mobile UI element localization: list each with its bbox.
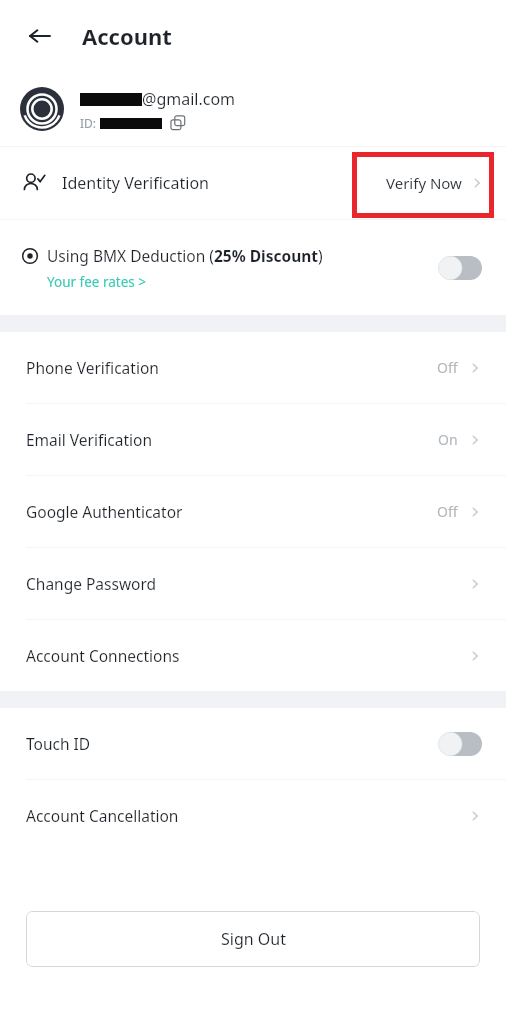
staticText: Account — [82, 21, 172, 51]
button[interactable]: @gmail.com — [0, 72, 506, 146]
button[interactable]: Change Password — [0, 548, 506, 619]
button[interactable]: Account Connections — [0, 620, 506, 691]
button[interactable]: Phone Verification — [0, 332, 506, 403]
button[interactable]: Toggle — [438, 732, 482, 756]
staticText: @gmail.com — [142, 88, 236, 110]
staticText: Email Verification — [26, 429, 152, 450]
button[interactable]: Using BMX Deduction (25% Discount) — [0, 220, 506, 315]
button[interactable]: Verify Now — [386, 173, 484, 193]
staticText: Off — [437, 358, 458, 377]
staticText: ID: — [80, 115, 100, 131]
button[interactable]: Sign Out — [26, 911, 480, 967]
staticText: Verify Now — [386, 173, 462, 193]
staticText: Google Authenticator — [26, 501, 183, 522]
staticText: Identity Verification — [62, 172, 209, 194]
staticText: Touch ID — [26, 733, 91, 754]
button[interactable]: Touch ID — [0, 708, 506, 779]
staticText: Off — [437, 502, 458, 521]
staticText: Account Connections — [26, 645, 180, 666]
staticText: Using BMX Deduction (25% Discount) — [47, 245, 323, 266]
button[interactable]: Identity Verification — [0, 147, 506, 219]
staticText: Account Cancellation — [26, 805, 179, 826]
staticText: Change Password — [26, 573, 157, 594]
button[interactable]: Account Cancellation — [0, 780, 506, 851]
staticText: Sign Out — [221, 928, 286, 950]
button[interactable]: Email Verification — [0, 404, 506, 475]
staticText: Phone Verification — [26, 357, 159, 378]
button[interactable]: Google Authenticator — [0, 476, 506, 547]
button[interactable]: Your fee rates > — [47, 273, 147, 291]
staticText: On — [438, 430, 458, 449]
button[interactable]: Copy ID — [170, 115, 186, 131]
button[interactable]: Toggle — [438, 256, 482, 280]
staticText: Your fee rates > — [47, 273, 147, 291]
button[interactable]: Back — [20, 16, 60, 56]
